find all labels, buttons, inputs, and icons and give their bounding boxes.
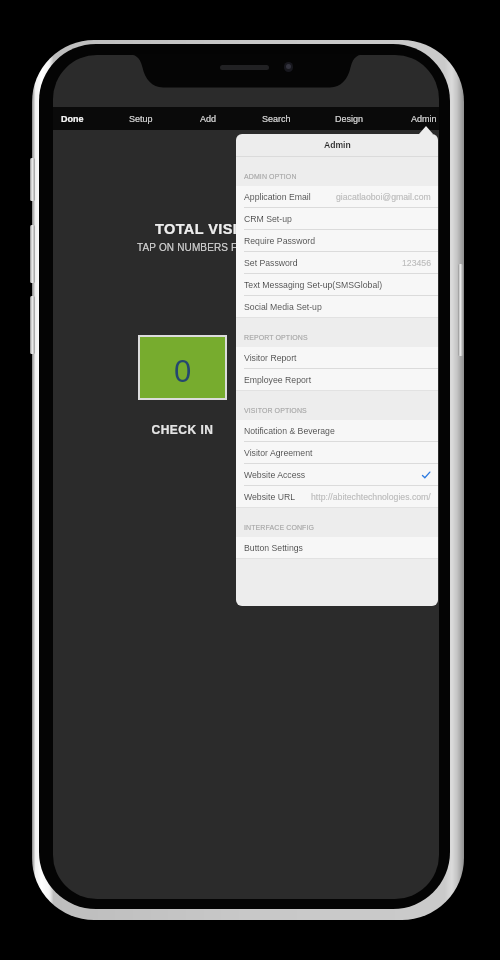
staticText: Visitor Report — [244, 353, 297, 363]
staticText: Set Password — [244, 258, 298, 268]
button[interactable]: Search — [246, 107, 306, 130]
button[interactable]: Website Access — [236, 464, 438, 486]
button[interactable]: Done — [53, 107, 102, 130]
staticText: Admin — [411, 114, 437, 124]
button[interactable]: Button Settings — [236, 537, 438, 559]
staticText: Website Access — [244, 470, 306, 480]
staticText: Visitor Agreement — [244, 448, 313, 458]
button[interactable]: Visitor Agreement — [236, 442, 438, 464]
staticText: Add — [200, 114, 217, 124]
staticText: 0 — [174, 354, 192, 389]
staticText: Employee Report — [244, 375, 312, 385]
button[interactable]: Set Password — [236, 252, 438, 274]
staticText: REPORT OPTIONS — [244, 334, 308, 342]
staticText: 123456 — [402, 258, 431, 268]
staticText: Require Password — [244, 236, 315, 246]
button[interactable]: CRM Set-up — [236, 208, 438, 230]
button[interactable]: Design — [319, 107, 379, 130]
staticText: Notification & Beverage — [244, 426, 335, 436]
other: Website Access enabled — [422, 471, 430, 479]
staticText: Search — [262, 114, 291, 124]
staticText: CHECK IN — [151, 423, 214, 436]
button[interactable]: Visitor Report — [236, 347, 438, 369]
staticText: TAP ON NUMBERS FOR DETAILS — [137, 242, 298, 253]
staticText: Website URL — [244, 492, 296, 502]
button[interactable]: Add — [178, 107, 238, 130]
staticText: TOTAL VISITORS — [155, 221, 279, 237]
button[interactable]: Social Media Set-up — [236, 296, 438, 318]
staticText: Application Email — [244, 192, 311, 202]
button[interactable]: 0 — [138, 335, 227, 400]
staticText: VISITOR OPTIONS — [244, 407, 307, 415]
button[interactable]: Require Password — [236, 230, 438, 252]
staticText: Design — [335, 114, 364, 124]
button[interactable]: Employee Report — [236, 369, 438, 391]
staticText: Social Media Set-up — [244, 302, 322, 312]
staticText: Setup — [129, 114, 153, 124]
button[interactable]: Admin — [394, 107, 439, 130]
staticText: INTERFACE CONFIG — [244, 524, 315, 532]
staticText: http://abitechtechnologies.com/ — [311, 492, 431, 502]
button[interactable]: Application Email — [236, 186, 438, 208]
staticText: giacatlaoboi@gmail.com — [336, 192, 431, 202]
staticText: CRM Set-up — [244, 214, 292, 224]
staticText: Button Settings — [244, 543, 303, 553]
staticText: Done — [61, 114, 84, 124]
button[interactable]: Setup — [111, 107, 171, 130]
button[interactable]: Notification & Beverage — [236, 420, 438, 442]
button[interactable]: Website URL — [236, 486, 438, 508]
button[interactable]: Text Messaging Set-up(SMSGlobal) — [236, 274, 438, 296]
staticText: ADMIN OPTION — [244, 173, 297, 181]
staticText: Text Messaging Set-up(SMSGlobal) — [244, 280, 383, 290]
staticText: Admin — [324, 140, 351, 150]
